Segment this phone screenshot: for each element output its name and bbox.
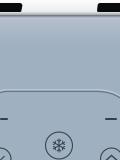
button[interactable]: Expand climate controls [100, 148, 120, 160]
button[interactable]: Air conditioning [45, 132, 72, 159]
button[interactable]: Fan speed [0, 148, 11, 160]
button[interactable]: Decrease driver temperature [0, 112, 16, 126]
button[interactable]: Decrease passenger temperature [99, 112, 117, 126]
